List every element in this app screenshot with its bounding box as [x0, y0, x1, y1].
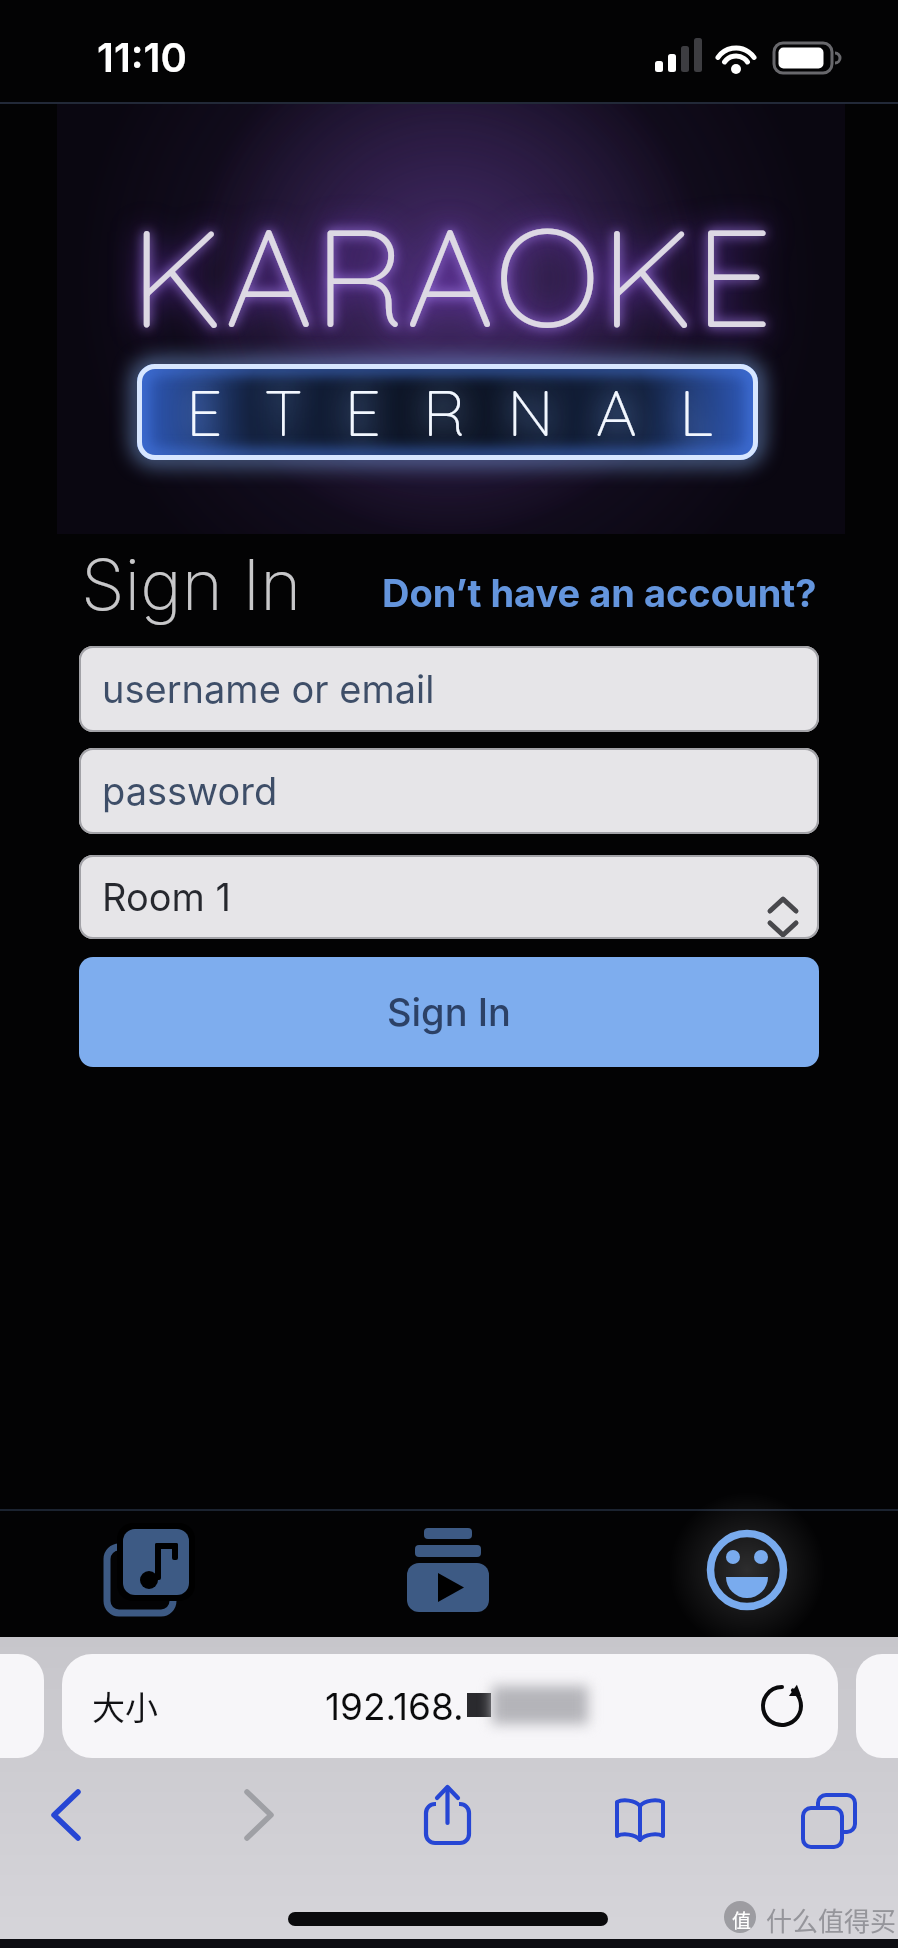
button[interactable]: Sign In [79, 957, 819, 1067]
staticText: Sign In [387, 989, 511, 1035]
staticText: username or email [102, 666, 435, 712]
staticText: 什么值得买 [766, 1901, 897, 1939]
button[interactable] [100, 1520, 200, 1620]
staticText: ETERNAL [186, 372, 755, 452]
staticText: 192.168. [325, 1684, 464, 1729]
staticText: 11:10 [97, 33, 187, 81]
staticText: KARAOKE [130, 189, 773, 329]
staticText: Don’t have an account? [382, 570, 817, 616]
staticText: 值 [732, 1906, 752, 1934]
staticText: 大小 [92, 1682, 158, 1730]
button[interactable] [667, 1490, 827, 1650]
staticText: KARAOKE [130, 189, 773, 329]
button[interactable]: password [79, 748, 819, 834]
button[interactable] [795, 1785, 865, 1855]
button[interactable]: 大小 [62, 1654, 838, 1758]
staticText: Sign In [81, 542, 302, 627]
button[interactable] [610, 1790, 670, 1850]
button[interactable] [40, 1785, 90, 1845]
button[interactable]: username or email [79, 646, 819, 732]
staticText: KARAOKE [130, 189, 773, 329]
button[interactable] [757, 1681, 807, 1731]
button[interactable] [400, 1520, 496, 1616]
button[interactable] [417, 1780, 479, 1850]
button[interactable]: Don’t have an account? [0, 568, 817, 618]
button[interactable]: Room 1 [79, 855, 819, 939]
staticText: password [102, 768, 278, 814]
button[interactable] [235, 1785, 285, 1845]
staticText: Room 1 [102, 874, 231, 920]
